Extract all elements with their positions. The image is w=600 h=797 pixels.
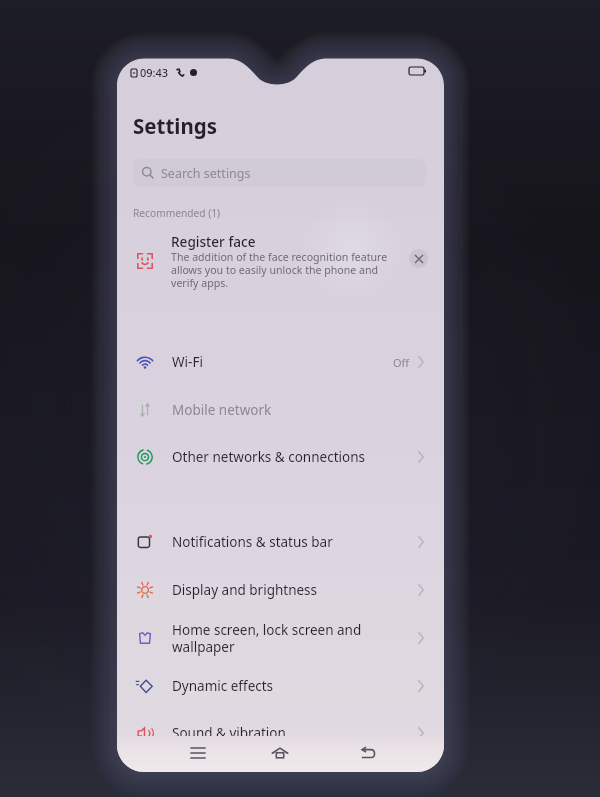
button[interactable]: Dynamic effects	[117, 663, 444, 709]
button[interactable]: Other networks & connections	[117, 434, 444, 480]
staticText: Settings	[133, 112, 218, 140]
button[interactable]: Register face	[133, 249, 157, 273]
staticText: Wi-Fi	[172, 353, 393, 371]
staticText: Off	[393, 355, 410, 370]
staticText: Other networks & connections	[172, 448, 418, 466]
button[interactable]: Recents	[182, 738, 214, 768]
button[interactable]: Notifications & status bar	[117, 519, 444, 565]
staticText: Dynamic effects	[172, 677, 418, 695]
button[interactable]: Home	[264, 738, 296, 768]
button[interactable]: Back	[352, 738, 384, 768]
button[interactable]: Dismiss	[409, 249, 428, 268]
staticText: Register face	[171, 232, 256, 251]
staticText: Search settings	[161, 165, 251, 182]
button[interactable]: Mobile network	[117, 387, 444, 433]
staticText: Recommended (1)	[133, 206, 221, 220]
staticText: Sound & vibration	[172, 724, 418, 742]
staticText: 09:43	[140, 65, 169, 80]
button[interactable]: Display and brightness	[117, 567, 444, 613]
staticText: Notifications & status bar	[172, 533, 418, 551]
staticText: Display and brightness	[172, 581, 418, 599]
button[interactable]: Sound & vibration	[117, 710, 444, 756]
button[interactable]: Wi-Fi	[117, 339, 444, 385]
staticText: Mobile network	[172, 401, 424, 419]
staticText: Home screen, lock screen and wallpaper	[172, 621, 418, 656]
button[interactable]: Home screen, lock screen and wallpaper	[117, 615, 444, 661]
staticText: The addition of the face recognition fea…	[171, 250, 399, 290]
button[interactable]: Search settings	[133, 159, 426, 187]
